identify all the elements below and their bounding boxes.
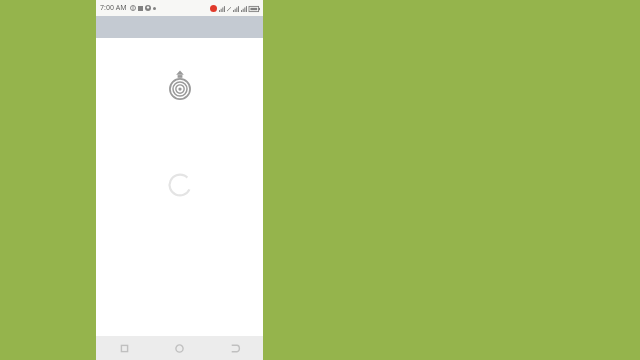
staticText: 7:00 AM [100,3,127,13]
button[interactable]: Back [97,336,152,360]
button[interactable]: Recent apps [208,336,263,360]
button[interactable]: App logo [168,70,192,100]
button[interactable]: Home [152,336,207,360]
